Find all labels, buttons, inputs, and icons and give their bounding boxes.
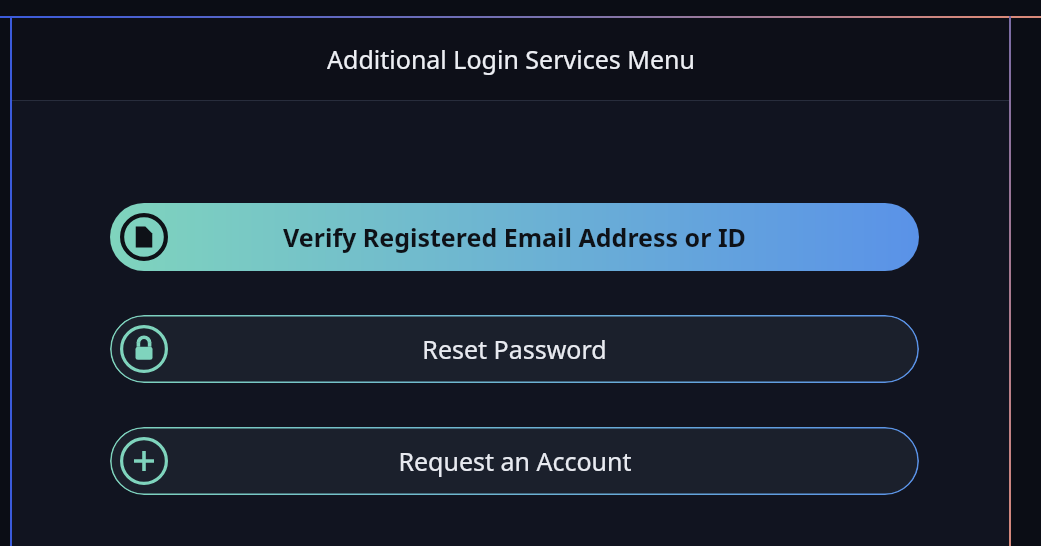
staticText: Verify Registered Email Address or ID: [283, 220, 746, 254]
other: Verify Registered Email Address or ID: [119, 212, 169, 262]
staticText: Additional Login Services Menu: [327, 42, 695, 76]
button[interactable]: Verify Registered Email Address or ID: [110, 203, 919, 271]
button[interactable]: Reset Password: [110, 315, 919, 383]
staticText: Reset Password: [422, 332, 607, 366]
button[interactable]: Request an Account: [110, 427, 919, 495]
other: Reset Password: [119, 324, 169, 374]
other: Request an Account: [119, 436, 169, 486]
staticText: Request an Account: [398, 444, 632, 478]
